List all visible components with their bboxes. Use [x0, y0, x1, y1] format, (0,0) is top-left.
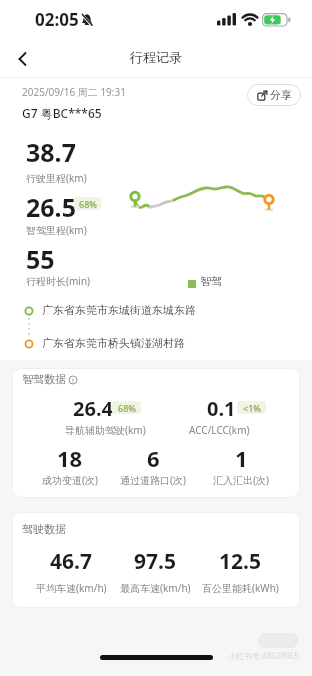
staticText: 12.5 [219, 547, 261, 576]
staticText: 智驾 [200, 274, 222, 288]
staticText: 驾驶数据 [22, 522, 66, 536]
staticText: 智驾数据 [22, 372, 66, 386]
staticText: 0.1 [207, 395, 236, 422]
staticText: 18 [57, 443, 83, 473]
staticText: 97.5 [134, 547, 176, 576]
staticText: 通过道路口(次) [120, 473, 186, 487]
staticText: 26.4 [73, 395, 113, 422]
staticText: <1% [243, 402, 261, 414]
staticText: 38.7 [26, 135, 76, 169]
staticText: 46.7 [50, 547, 92, 576]
staticText: 1 [235, 443, 248, 473]
button[interactable]: 分享 [247, 84, 301, 106]
staticText: 广东省东莞市桥头镇湴湖村路 [42, 336, 185, 350]
staticText: 平均车速(km/h) [36, 581, 107, 595]
staticText: 6 [147, 443, 160, 473]
staticText: 最高车速(km/h) [120, 581, 191, 595]
staticText: G7 粤BC***65 [22, 105, 102, 121]
staticText: 导航辅助驾驶(km) [65, 423, 146, 437]
staticText: 广东省东莞市东城街道东城东路 [42, 303, 196, 317]
staticText: 智驾里程(km) [26, 223, 87, 237]
staticText: 行程记录 [130, 49, 182, 65]
staticText: 68% [118, 402, 136, 414]
staticText: 成功变道(次) [42, 473, 98, 487]
staticText: 26.5 [26, 190, 76, 224]
staticText: 2025/09/16 周二 19:31 [22, 85, 126, 99]
staticText: 小红书号:48928965 [228, 650, 299, 661]
staticText: 02:05 [35, 8, 79, 31]
staticText: ACC/LCC(km) [189, 423, 250, 437]
button[interactable] [10, 46, 46, 74]
staticText: 行驶里程(km) [26, 171, 87, 185]
staticText: 行程时长(min) [26, 274, 91, 288]
staticText: 68% [79, 198, 97, 210]
staticText: 55 [26, 242, 55, 276]
staticText: 汇入汇出(次) [213, 473, 269, 487]
staticText: 百公里能耗(kWh) [202, 581, 279, 595]
staticText: 分享 [270, 88, 292, 102]
